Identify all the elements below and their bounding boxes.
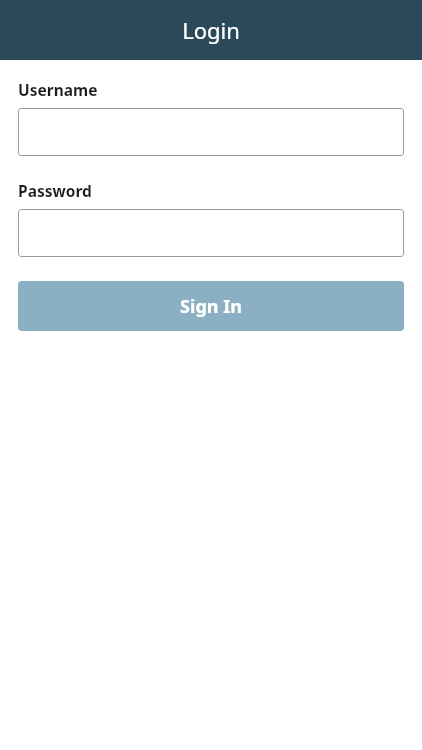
staticText: Sign In	[180, 294, 242, 319]
button[interactable]: Sign In	[18, 281, 404, 331]
staticText: Username	[18, 79, 98, 100]
button[interactable]	[18, 108, 404, 156]
staticText: Password	[18, 180, 92, 201]
staticText: Login	[182, 15, 240, 45]
button[interactable]	[18, 209, 404, 257]
